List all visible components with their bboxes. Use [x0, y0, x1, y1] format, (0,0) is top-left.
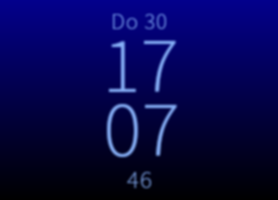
- staticText: Do 30: [111, 5, 168, 38]
- staticText: 17: [102, 10, 179, 124]
- staticText: 07: [103, 74, 180, 188]
- staticText: 46: [127, 162, 153, 198]
